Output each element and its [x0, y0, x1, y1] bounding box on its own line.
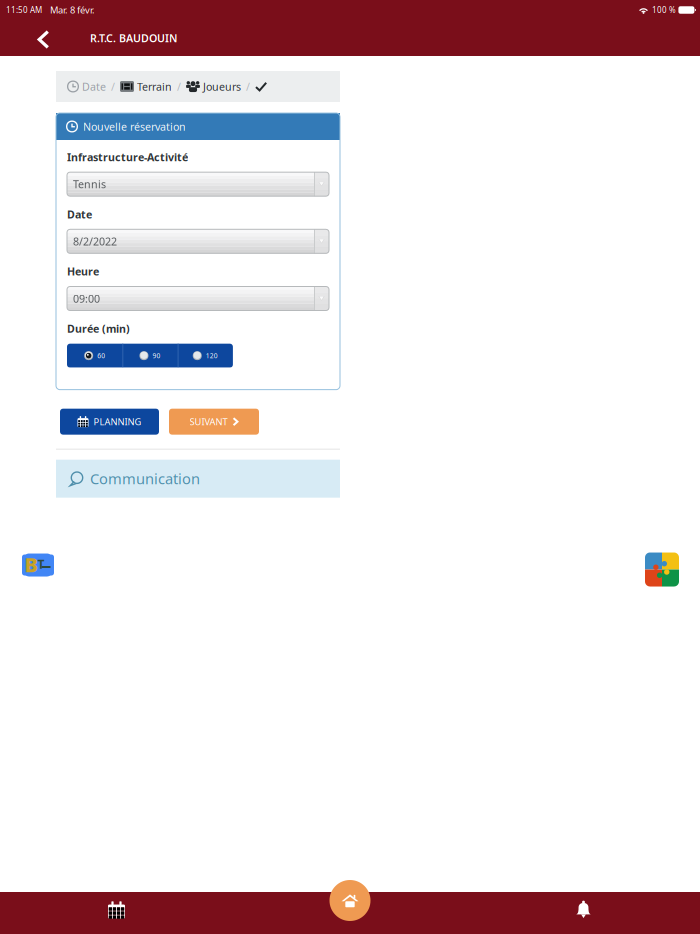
staticText: Mar. 8 févr.: [50, 4, 95, 16]
button[interactable]: SUIVANT: [169, 409, 259, 435]
button[interactable]: 60: [67, 344, 122, 368]
button[interactable]: Accueil: [233, 892, 467, 934]
staticText: Joueurs: [203, 79, 241, 94]
staticText: 60: [97, 351, 105, 360]
staticText: PLANNING: [93, 415, 141, 428]
button[interactable]: 90: [122, 344, 178, 368]
button[interactable]: Joueurs: [186, 79, 241, 94]
staticText: R.T.C. BAUDOUIN: [90, 31, 177, 45]
staticText: Date: [67, 207, 92, 221]
button[interactable]: 120: [178, 344, 233, 368]
staticText: Tennis: [73, 177, 106, 191]
staticText: 11:50 AM: [6, 5, 42, 15]
staticText: /: [246, 79, 250, 94]
button[interactable]: Date: [67, 79, 106, 94]
button[interactable]: Planning: [0, 892, 233, 934]
staticText: Nouvelle réservation: [83, 119, 186, 134]
button[interactable]: Communication: [56, 460, 340, 498]
staticText: 120: [206, 351, 218, 360]
staticText: 90: [152, 351, 160, 360]
staticText: T: [37, 556, 44, 572]
staticText: Date: [82, 79, 106, 94]
button[interactable]: Notifications: [467, 892, 700, 934]
staticText: Durée (min): [67, 321, 130, 336]
staticText: Infrastructure-Activité: [67, 150, 188, 164]
button[interactable]: 8/2/2022: [67, 229, 329, 253]
button[interactable]: Tennis: [67, 172, 329, 196]
staticText: 09:00: [73, 291, 100, 306]
staticText: Heure: [67, 264, 99, 278]
button[interactable]: Terrain: [120, 79, 172, 94]
button[interactable]: 09:00: [67, 286, 329, 310]
staticText: /: [177, 79, 181, 94]
button[interactable]: PLANNING: [60, 409, 159, 435]
button[interactable]: Retour: [0, 20, 56, 56]
staticText: 100 %: [652, 5, 676, 15]
staticText: Terrain: [137, 79, 172, 94]
staticText: SUIVANT: [189, 415, 227, 428]
staticText: B: [24, 551, 37, 578]
staticText: Communication: [90, 469, 200, 488]
staticText: 8/2/2022: [73, 234, 117, 248]
staticText: /: [111, 79, 115, 94]
button[interactable]: Accueil: [329, 880, 370, 921]
